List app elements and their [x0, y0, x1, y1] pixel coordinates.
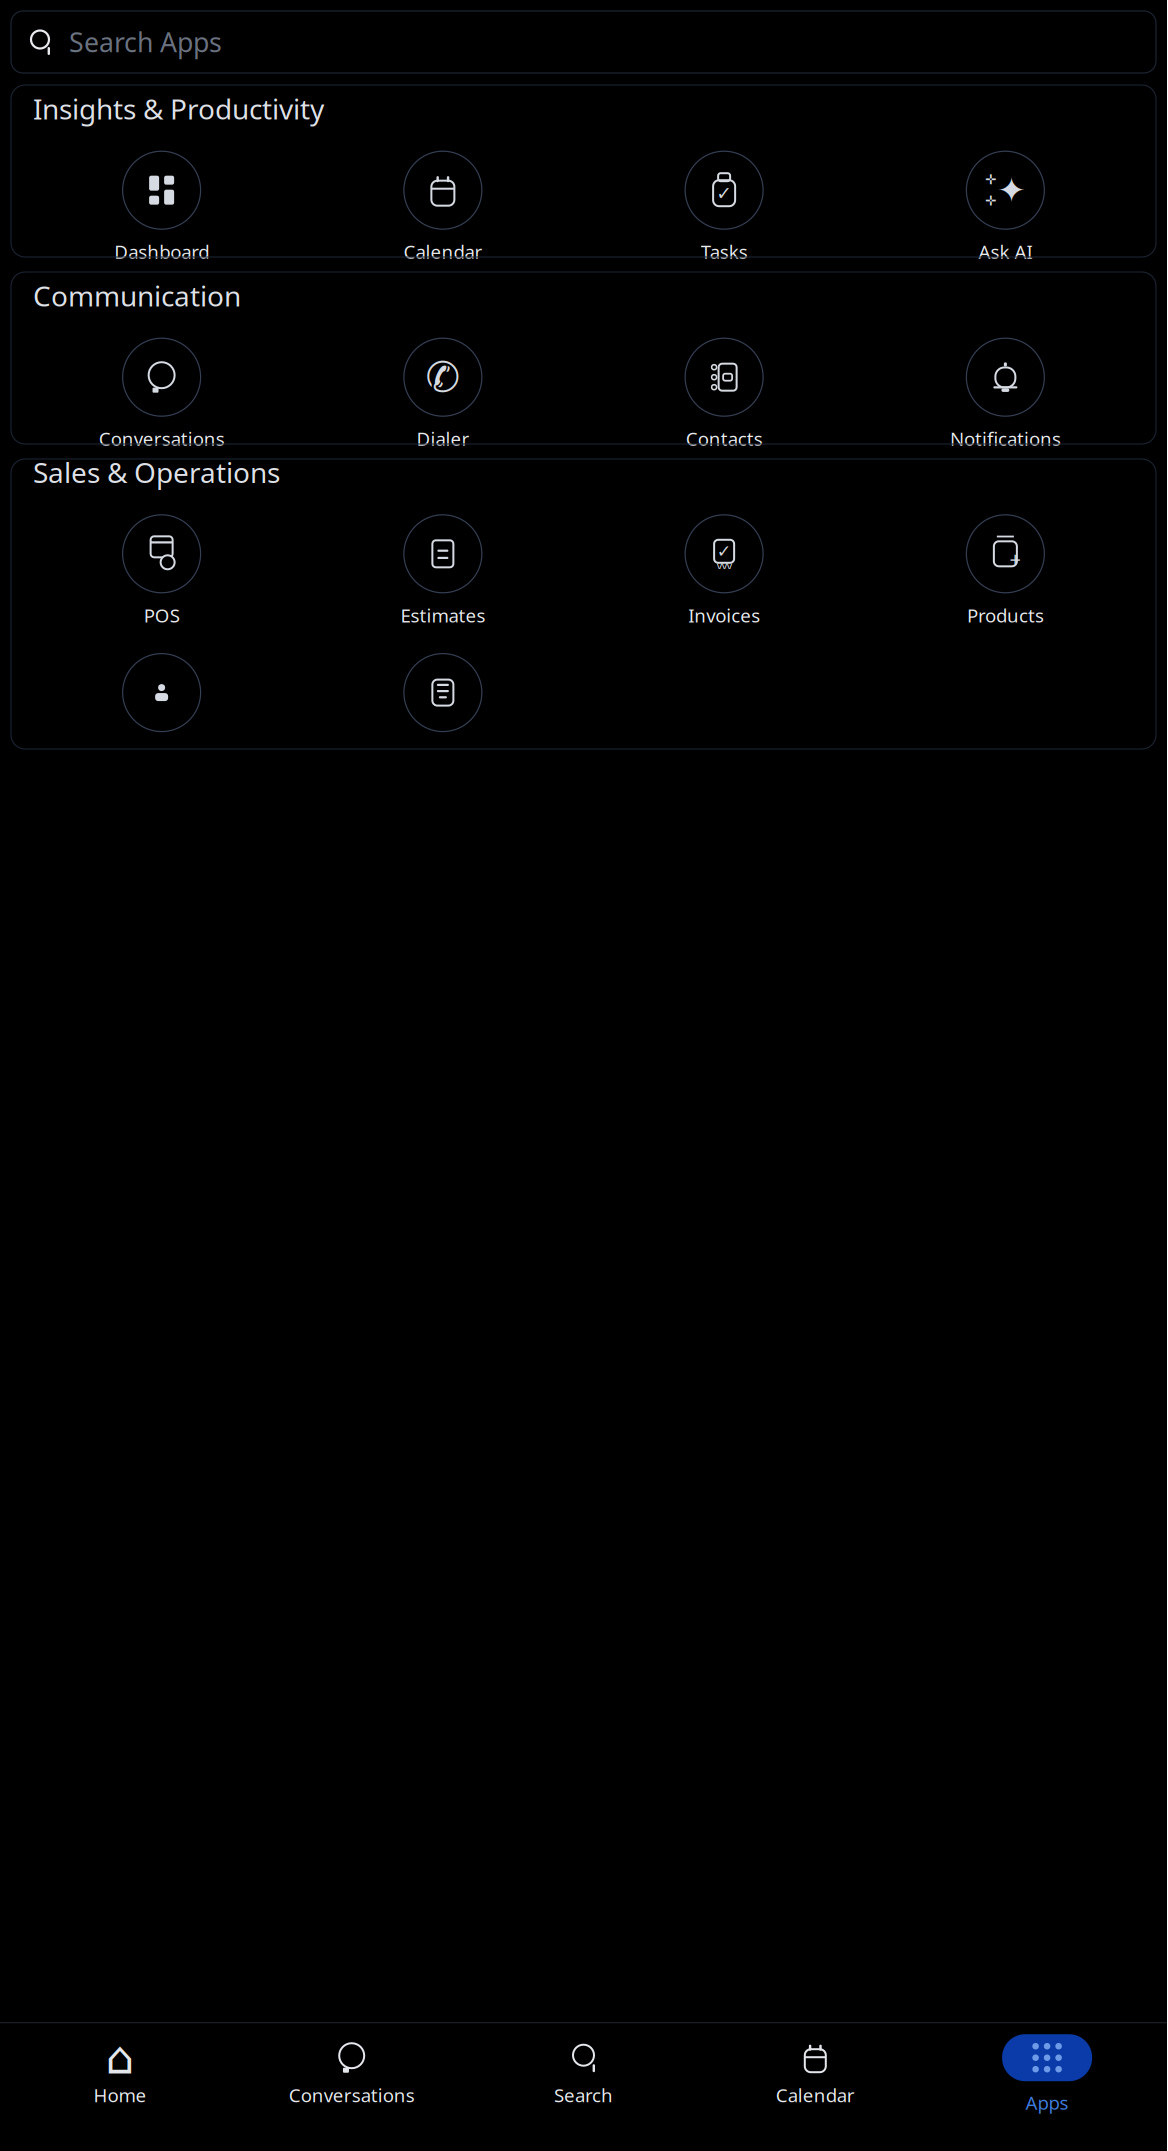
- button[interactable]: +: [865, 515, 1146, 628]
- button[interactable]: Search Apps: [11, 11, 1156, 73]
- staticText: ⌂: [105, 2032, 134, 2083]
- staticText: Estimates: [400, 603, 485, 628]
- button[interactable]: Apps: [931, 2034, 1163, 2115]
- staticText: Contacts: [686, 426, 763, 451]
- staticText: Apps: [1026, 2090, 1069, 2115]
- staticText: Invoices: [688, 603, 760, 628]
- staticText: Conversations: [99, 426, 225, 451]
- staticText: Sales & Operations: [33, 454, 280, 491]
- staticText: Dashboard: [114, 239, 209, 264]
- button[interactable]: ✓: [583, 515, 865, 628]
- staticText: +: [1009, 545, 1020, 572]
- staticText: Search Apps: [69, 24, 222, 60]
- staticText: ✦: [997, 170, 1026, 210]
- button[interactable]: ✛: [865, 151, 1146, 264]
- button[interactable]: ✓: [583, 151, 865, 264]
- button[interactable]: Contacts: [583, 338, 865, 451]
- staticText: Calendar: [776, 2083, 855, 2107]
- button[interactable]: Search: [468, 2042, 699, 2107]
- staticText: ✛: [985, 193, 996, 208]
- staticText: vvv: [717, 558, 732, 572]
- button[interactable]: Calendar: [699, 2042, 931, 2107]
- button[interactable]: [21, 654, 302, 766]
- staticText: ✆: [425, 354, 460, 401]
- staticText: Notifications: [950, 426, 1061, 451]
- staticText: POS: [144, 603, 180, 628]
- staticText: Home: [93, 2083, 146, 2107]
- staticText: Conversations: [289, 2083, 415, 2107]
- staticText: ✛: [985, 172, 996, 187]
- button[interactable]: [302, 654, 584, 766]
- staticText: Dialer: [416, 426, 469, 451]
- button[interactable]: Conversations: [236, 2042, 468, 2107]
- staticText: Products: [967, 603, 1044, 628]
- staticText: Tasks: [701, 239, 748, 264]
- staticText: Ask AI: [978, 239, 1032, 264]
- button[interactable]: Dashboard: [21, 151, 302, 264]
- staticText: ✓: [716, 183, 732, 204]
- staticText: Insights & Productivity: [33, 90, 324, 127]
- button[interactable]: POS: [21, 515, 302, 628]
- button[interactable]: Notifications: [865, 338, 1146, 451]
- button[interactable]: ⌂: [4, 2042, 236, 2107]
- staticText: ✓: [717, 541, 732, 561]
- staticText: Calendar: [403, 239, 482, 264]
- button[interactable]: ✆: [302, 338, 584, 451]
- button[interactable]: Calendar: [302, 151, 584, 264]
- button[interactable]: Conversations: [21, 338, 302, 451]
- staticText: Search: [554, 2083, 613, 2107]
- button[interactable]: Estimates: [302, 515, 584, 628]
- staticText: Communication: [33, 277, 241, 314]
